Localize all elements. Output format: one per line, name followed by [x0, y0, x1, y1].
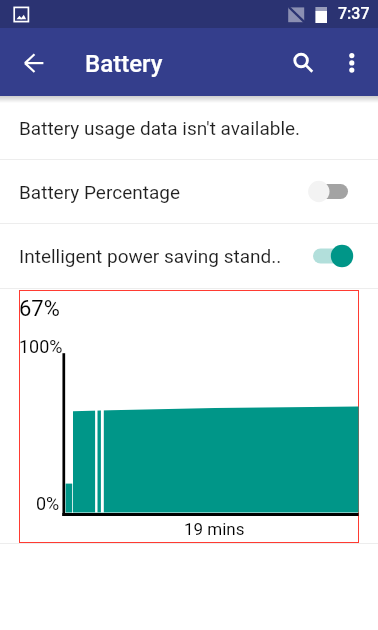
- staticText: 19 mins: [184, 519, 245, 539]
- button[interactable]: Search: [278, 37, 328, 87]
- staticText: 7:37: [338, 4, 370, 23]
- button[interactable]: Intelligent power saving stand..: [0, 224, 378, 288]
- staticText: Battery Percentage: [19, 181, 308, 203]
- button[interactable]: Battery usage data isn't available.: [0, 96, 378, 159]
- staticText: Intelligent power saving stand..: [19, 245, 308, 267]
- staticText: Battery usage data isn't available.: [19, 117, 301, 139]
- button[interactable]: More options: [328, 37, 378, 87]
- staticText: 100%: [19, 336, 63, 357]
- button[interactable]: Battery Percentage: [0, 160, 378, 223]
- staticText: 0%: [36, 493, 60, 514]
- staticText: 67%: [19, 296, 60, 322]
- button[interactable]: Navigate up: [10, 38, 58, 86]
- staticText: Battery: [85, 50, 163, 78]
